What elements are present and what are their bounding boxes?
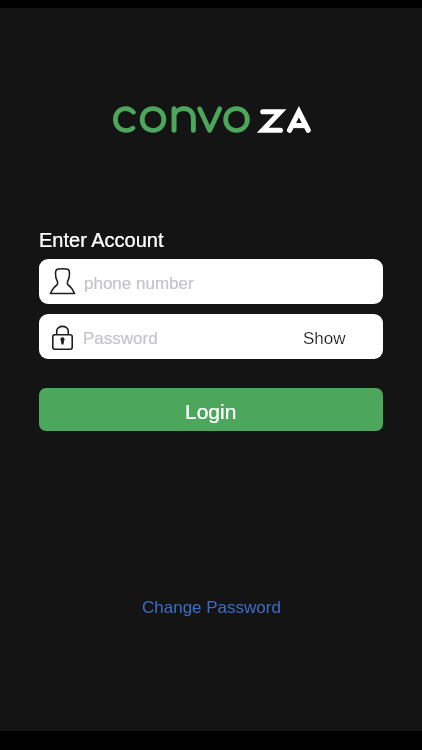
other: ZA [260, 109, 311, 133]
button[interactable]: Show [284, 314, 383, 359]
staticText: Show [303, 329, 346, 348]
staticText: Password [83, 329, 158, 348]
button[interactable]: Change Password [132, 594, 291, 621]
button[interactable]: Account [39, 259, 383, 304]
other: Account [50, 268, 75, 295]
staticText: Enter Account [39, 229, 164, 251]
staticText: phone number [84, 274, 194, 293]
staticText: convo [111, 92, 252, 142]
button[interactable]: Login [39, 388, 383, 431]
other: Password [52, 324, 73, 350]
staticText: Login [185, 400, 237, 423]
button[interactable]: Password [39, 314, 383, 359]
staticText: Change Password [142, 598, 281, 617]
